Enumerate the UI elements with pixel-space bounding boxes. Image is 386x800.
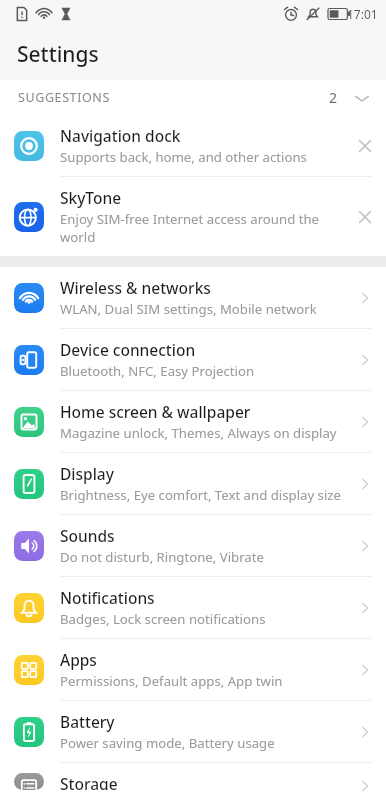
staticText: Notifications <box>60 587 155 608</box>
staticText: Settings <box>17 40 99 69</box>
staticText: Enjoy SIM-free Internet access around th… <box>60 210 320 246</box>
staticText: Navigation dock <box>60 125 181 146</box>
staticText: Permissions, Default apps, App twin <box>60 672 283 690</box>
button[interactable]: Dismiss suggestion <box>348 129 382 163</box>
staticText: Wireless & networks <box>60 277 211 298</box>
staticText: Do not disturb, Ringtone, Vibrate <box>60 548 264 566</box>
button[interactable]: Notifications <box>0 577 386 638</box>
staticText: Supports back, home, and other actions <box>60 148 307 166</box>
staticText: WLAN, Dual SIM settings, Mobile network <box>60 300 317 318</box>
staticText: Power saving mode, Battery usage <box>60 734 275 752</box>
button[interactable]: SkyTone <box>0 177 386 256</box>
staticText: Brightness, Eye comfort, Text and displa… <box>60 486 341 504</box>
staticText: SUGGESTIONS <box>18 89 110 106</box>
button[interactable]: Home screen & wallpaper <box>0 391 386 452</box>
button[interactable]: SUGGESTIONS <box>0 80 386 115</box>
button[interactable]: Device connection <box>0 329 386 390</box>
staticText: Badges, Lock screen notifications <box>60 610 266 628</box>
button[interactable]: Storage <box>0 763 386 800</box>
button[interactable]: Apps <box>0 639 386 700</box>
staticText: Magazine unlock, Themes, Always on displ… <box>60 424 337 442</box>
button[interactable]: Battery <box>0 701 386 762</box>
staticText: SkyTone <box>60 187 122 208</box>
button[interactable]: Wireless & networks <box>0 267 386 328</box>
staticText: Storage <box>60 773 118 790</box>
button[interactable]: Dismiss suggestion <box>348 200 382 234</box>
staticText: Bluetooth, NFC, Easy Projection <box>60 362 255 380</box>
staticText: Display <box>60 463 114 484</box>
staticText: Sounds <box>60 525 115 546</box>
staticText: Apps <box>60 649 97 670</box>
staticText: Device connection <box>60 339 196 360</box>
staticText: Battery <box>60 711 115 732</box>
button[interactable]: Display <box>0 453 386 514</box>
button[interactable]: Navigation dock <box>0 115 386 176</box>
staticText: 2 <box>329 88 338 107</box>
staticText: Home screen & wallpaper <box>60 401 251 422</box>
staticText: 17:01 <box>347 6 378 22</box>
button[interactable]: Sounds <box>0 515 386 576</box>
